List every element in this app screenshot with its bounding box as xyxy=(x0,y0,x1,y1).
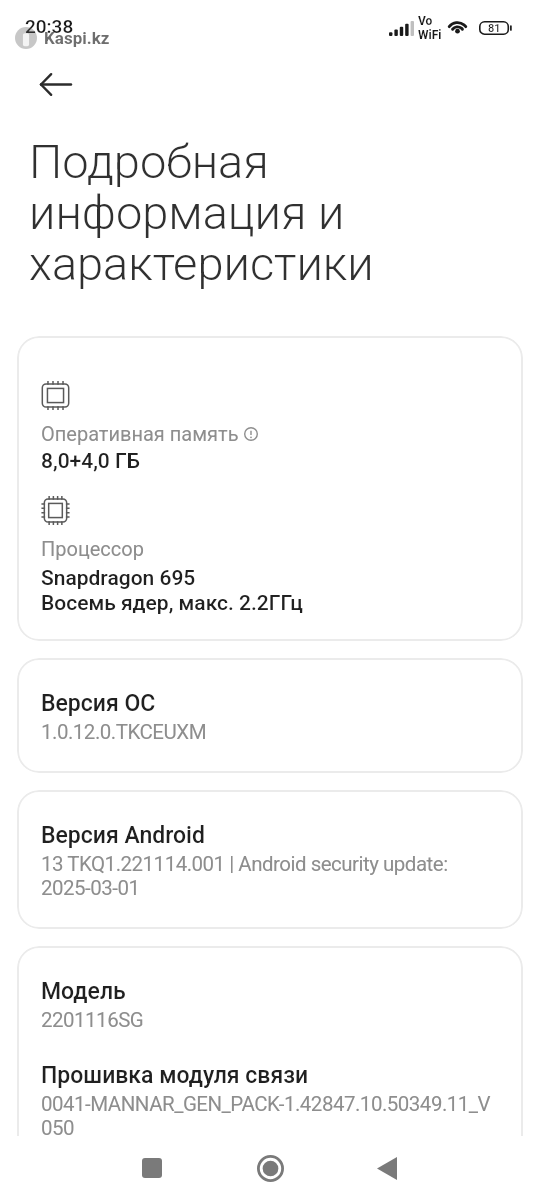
staticText: Прошивка модуля связи xyxy=(41,1062,309,1089)
staticText: 81 xyxy=(488,22,501,35)
staticText: Версия ОС xyxy=(41,690,156,717)
staticText: Оперативная память xyxy=(41,422,239,445)
staticText: Процессор xyxy=(41,537,144,560)
staticText: 8,0+4,0 ГБ xyxy=(41,449,140,474)
staticText: 2201116SG xyxy=(41,1008,144,1032)
staticText: Подробная информация и характеристики xyxy=(29,138,460,291)
staticText: Kaspi.kz xyxy=(44,28,110,48)
button[interactable]: Home xyxy=(240,1138,300,1198)
staticText: 20:38 xyxy=(25,15,74,37)
staticText: Восемь ядер, макс. 2.2ГГц xyxy=(41,591,303,616)
staticText: Vo xyxy=(418,14,433,28)
button[interactable]: Recent apps xyxy=(122,1138,182,1198)
staticText: Модель xyxy=(41,978,126,1005)
staticText: 1.0.12.0.TKCEUXM xyxy=(41,720,207,744)
staticText: Версия Android xyxy=(41,822,205,849)
button[interactable]: Версия Android xyxy=(17,790,523,929)
button[interactable]: Оперативная память xyxy=(17,336,523,641)
button[interactable]: Back xyxy=(32,61,78,107)
staticText: WiFi xyxy=(418,28,442,42)
button[interactable]: Модель xyxy=(17,946,523,1169)
staticText: 0041-MANNAR_GEN_PACK-1.42847.10.50349.11… xyxy=(41,1092,491,1140)
staticText: 13 TKQ1.221114.001 | Android security up… xyxy=(41,852,513,900)
button[interactable]: Версия ОС xyxy=(17,658,523,773)
button[interactable]: Back xyxy=(357,1138,417,1198)
staticText: Snapdragon 695 xyxy=(41,566,196,591)
